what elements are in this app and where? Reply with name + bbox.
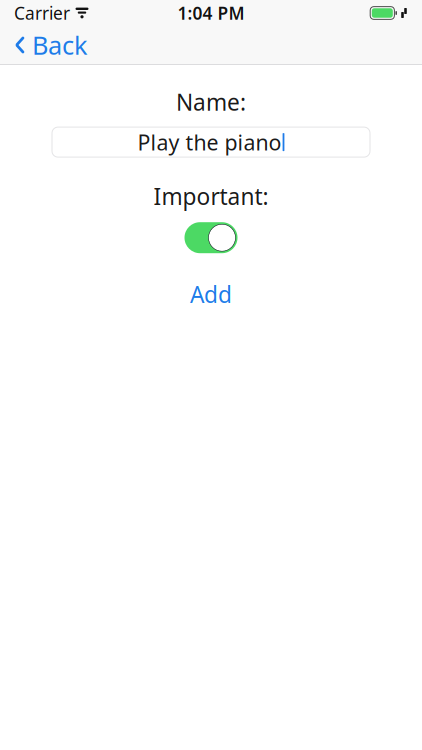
- staticText: Play the piano: [138, 128, 282, 156]
- staticText: Name:: [176, 87, 246, 117]
- button[interactable]: Important: [176, 218, 245, 257]
- button[interactable]: Add: [172, 273, 250, 315]
- staticText: Back: [32, 28, 88, 62]
- staticText: Carrier: [14, 1, 70, 24]
- staticText: Add: [190, 279, 232, 309]
- button[interactable]: Back: [0, 21, 100, 69]
- staticText: 1:04 PM: [177, 1, 244, 24]
- staticText: Important:: [153, 181, 268, 211]
